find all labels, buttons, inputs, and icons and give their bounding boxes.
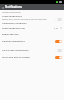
button[interactable]: Back — [0, 5, 5, 10]
staticText: Manage notifications — [2, 11, 21, 14]
staticText: Allow notifications — [2, 15, 22, 18]
staticText: Notification categories — [2, 22, 62, 25]
button[interactable]: Toggle off — [55, 49, 62, 52]
staticText: 3 on — [54, 27, 59, 30]
button[interactable]: Touch and hold to change — [0, 54, 64, 60]
button[interactable]: Lock screen notifications — [0, 47, 64, 53]
staticText: Lock screen notifications — [2, 49, 54, 52]
staticText: Touch and hold to change — [2, 56, 54, 59]
button[interactable]: Notification categories — [0, 21, 64, 26]
button[interactable]: Toggle on — [55, 40, 62, 43]
button[interactable]: Allow notifications — [0, 15, 64, 22]
button[interactable]: Toggle off — [55, 18, 62, 21]
button[interactable]: Show notification dot — [0, 25, 64, 31]
button[interactable]: Floating notifications — [0, 38, 64, 44]
staticText: Floating notifications — [2, 40, 54, 43]
button[interactable]: Toggle on — [55, 56, 62, 59]
staticText: Notifications — [5, 5, 22, 9]
staticText: Badge app icon — [2, 33, 62, 36]
staticText: Receive alerts, banners and sounds from … — [2, 18, 47, 20]
staticText: Show notification dot — [2, 27, 54, 30]
button[interactable]: Badge app icon — [0, 31, 64, 37]
